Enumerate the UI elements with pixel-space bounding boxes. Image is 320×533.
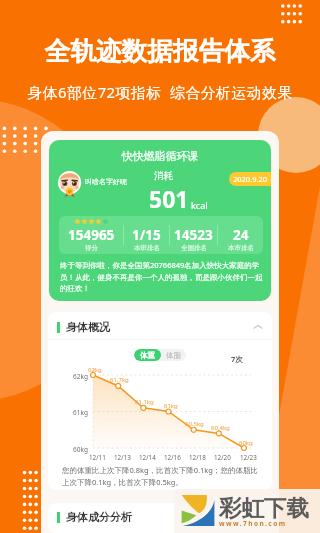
staticText: 本市排名 [228, 244, 254, 252]
staticText: 快快燃脂循环课 [49, 149, 271, 163]
staticText: 12/20 [214, 453, 231, 462]
staticText: 154965 [68, 226, 115, 244]
staticText: 12/14 [139, 453, 156, 462]
staticText: 身体6部位72项指标 综合分析运动效果 [0, 82, 320, 102]
staticText: 61kg [73, 408, 88, 417]
staticText: 彩虹下载 [219, 494, 309, 522]
staticText: 12/16 [164, 453, 181, 462]
staticText: 60kg [239, 439, 253, 447]
staticText: 61.1kg [135, 398, 154, 406]
button[interactable]: 体重 [134, 349, 161, 361]
staticText: 您的体重比上次下降0.8kg，比首次下降0.1kg；您的体脂比上次下降0.1kg… [62, 465, 258, 488]
staticText: 终于等到你啦，你是全国第20766849名加入快快大家庭的学员！从此，健身不再是… [60, 260, 265, 293]
staticText: 2020.9.20 [233, 174, 268, 184]
staticText: 12/13 [114, 453, 131, 462]
staticText: 24 [233, 226, 249, 244]
staticText: 本班排名 [134, 244, 160, 252]
staticText: 14523 [174, 226, 213, 244]
staticText: 62kg [88, 366, 102, 374]
staticText: 61kg [164, 402, 178, 410]
staticText: 60kg [73, 445, 88, 454]
staticText: 7次 [231, 354, 243, 364]
other: Collapse [253, 322, 263, 332]
staticText: 叫啥名字好呢 [85, 177, 127, 186]
staticText: 得分 [85, 244, 98, 252]
staticText: 体重 [140, 351, 155, 360]
staticText: 60.5kg [185, 420, 204, 428]
staticText: 身体成分分析 [66, 510, 132, 524]
staticText: 12/18 [189, 453, 206, 462]
staticText: 消耗 [154, 170, 173, 182]
staticText: 全国排名 [181, 244, 207, 252]
staticText: 全轨迹数据报告体系 [0, 35, 320, 67]
staticText: 62kg [73, 372, 88, 381]
button[interactable]: 身体概况 [57, 320, 263, 334]
staticText: 1/15 [132, 226, 161, 244]
staticText: 12/23 [240, 453, 257, 462]
staticText: 60.4kg [211, 424, 230, 432]
staticText: 体脂 [166, 351, 181, 360]
staticText: 501 [149, 183, 189, 214]
staticText: 身体概况 [66, 320, 110, 334]
staticText: 61.7kg [110, 376, 129, 384]
button[interactable]: 体脂 [161, 349, 186, 361]
staticText: www.7hon.com [219, 519, 287, 528]
staticText: kcal [191, 199, 208, 211]
staticText: 12/11 [89, 453, 106, 462]
